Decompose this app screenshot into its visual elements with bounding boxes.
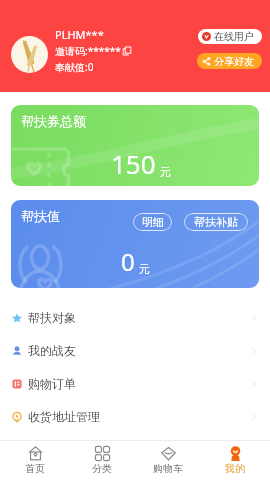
button[interactable]: 在线用户 — [198, 29, 262, 44]
staticText: 邀请码:****** — [55, 44, 121, 58]
staticText: 明细 — [142, 215, 164, 229]
staticText: 首页 — [25, 462, 45, 475]
button[interactable]: 购物车 — [137, 441, 199, 480]
staticText: 我的战友 — [28, 343, 76, 358]
staticText: 收货地址管理 — [28, 409, 100, 424]
staticText: 分享好友 — [214, 55, 254, 68]
button[interactable]: 分享好友 — [197, 53, 262, 69]
button[interactable]: 首页 — [4, 441, 66, 480]
staticText: 元 — [139, 262, 150, 276]
button[interactable]: 我的战友 — [0, 334, 270, 367]
button[interactable]: 帮扶券总额 — [11, 105, 259, 186]
staticText: 购物车 — [153, 462, 183, 475]
staticText: 购物订单 — [28, 376, 76, 391]
button[interactable]: 帮扶对象 — [0, 301, 270, 334]
staticText: 帮扶补贴 — [194, 215, 238, 229]
button[interactable]: 帮扶补贴 — [184, 213, 248, 231]
button[interactable]: 购物订单 — [0, 367, 270, 400]
staticText: 帮扶对象 — [28, 310, 76, 325]
button[interactable]: 收货地址管理 — [0, 400, 270, 433]
staticText: 奉献值:0 — [55, 60, 94, 74]
staticText: 元 — [160, 165, 171, 179]
button[interactable]: 帮扶值 — [11, 200, 259, 288]
staticText: 150 — [111, 146, 156, 181]
staticText: PLHM*** — [55, 27, 104, 42]
button[interactable]: 明细 — [133, 213, 172, 231]
button[interactable]: 我的 — [204, 441, 266, 480]
button[interactable]: 分类 — [71, 441, 133, 480]
staticText: 帮扶券总额 — [21, 113, 86, 129]
staticText: 在线用户 — [214, 30, 254, 43]
staticText: 我的 — [225, 462, 245, 475]
staticText: 分类 — [92, 462, 112, 475]
staticText: 帮扶值 — [21, 208, 60, 224]
staticText: 0 — [121, 245, 135, 278]
button[interactable]: Copy invite code — [123, 47, 131, 55]
